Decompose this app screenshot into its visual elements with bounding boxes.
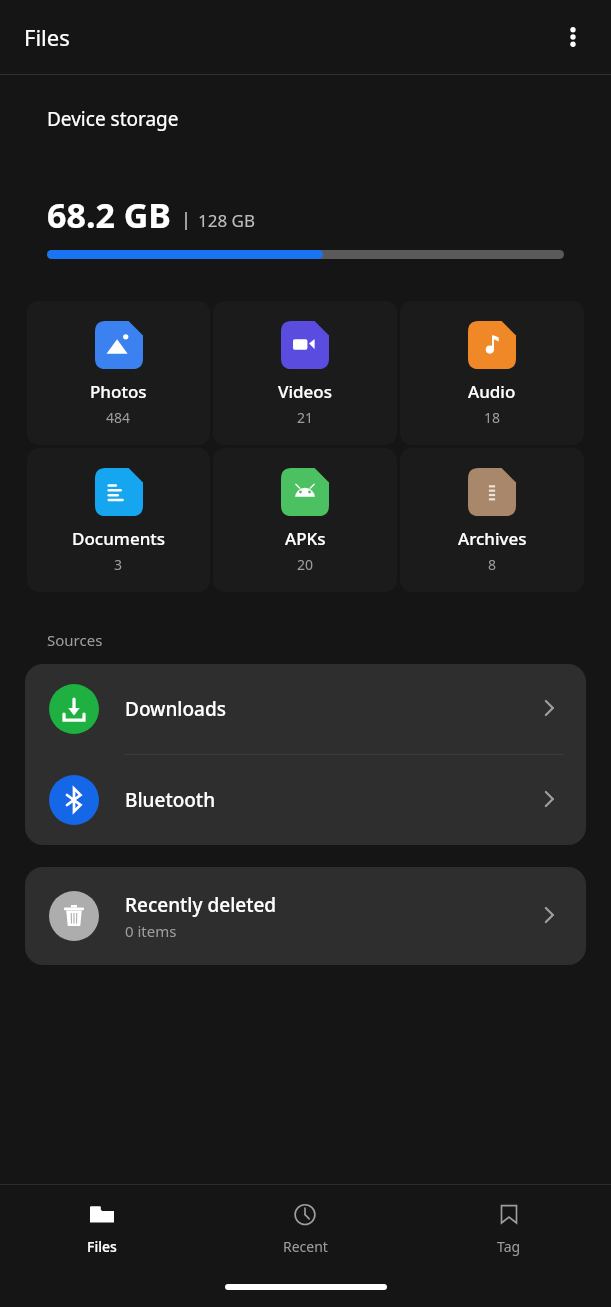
staticText: 18 (484, 408, 501, 427)
staticText: Bluetooth (125, 787, 216, 813)
staticText: Recently deleted (125, 892, 277, 918)
staticText: Files (87, 1237, 117, 1256)
staticText: 21 (297, 408, 314, 427)
button[interactable]: Tag (407, 1185, 611, 1276)
staticText: Files (24, 22, 70, 52)
button[interactable]: Bluetooth (25, 755, 586, 845)
button[interactable]: Archives (400, 448, 584, 592)
button[interactable]: APKs (213, 448, 397, 592)
staticText: Device storage (47, 106, 179, 132)
staticText: 68.2 GB (47, 192, 171, 238)
button[interactable]: More options (549, 13, 597, 61)
staticText: 0 items (125, 921, 177, 941)
staticText: Recent (283, 1237, 328, 1256)
staticText: Photos (90, 380, 147, 403)
staticText: 20 (297, 555, 314, 574)
staticText: Downloads (125, 696, 226, 722)
staticText: 484 (106, 408, 131, 427)
button[interactable]: Audio (400, 301, 584, 445)
staticText: 8 (488, 555, 497, 574)
staticText: 128 GB (198, 209, 256, 232)
button[interactable]: Downloads (25, 664, 586, 754)
staticText: Tag (497, 1237, 521, 1256)
staticText: 3 (114, 555, 123, 574)
button[interactable]: Videos (213, 301, 397, 445)
staticText: Sources (47, 630, 103, 650)
button[interactable]: Recently deleted (25, 867, 586, 965)
button[interactable]: Documents (27, 448, 210, 592)
staticText: APKs (285, 527, 326, 550)
staticText: Archives (458, 527, 527, 550)
button[interactable]: Files (0, 1185, 203, 1276)
button[interactable]: Recent (203, 1185, 407, 1276)
staticText: Audio (468, 380, 516, 403)
staticText: Documents (72, 527, 166, 550)
staticText: Videos (278, 380, 332, 403)
button[interactable]: Photos (27, 301, 210, 445)
